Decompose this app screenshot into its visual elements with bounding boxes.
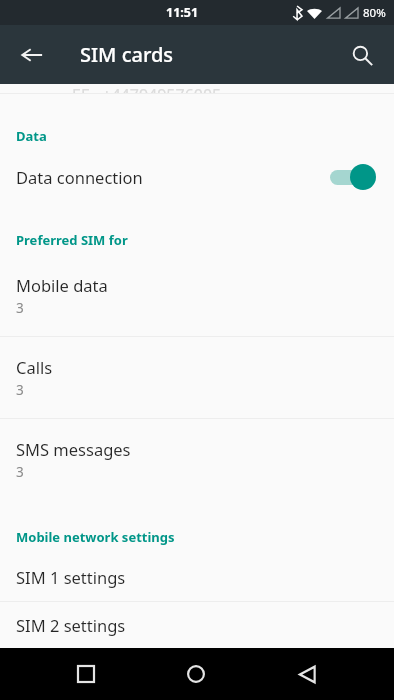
button[interactable]: Back — [8, 31, 56, 79]
button[interactable]: Back — [283, 650, 331, 698]
staticText: 3 — [16, 381, 24, 399]
staticText: Calls — [16, 356, 53, 378]
staticText: Mobile network settings — [16, 528, 175, 546]
staticText: 3 — [16, 463, 24, 481]
button[interactable]: EE +447949576005 — [0, 84, 394, 93]
staticText: SMS messages — [16, 438, 131, 460]
button[interactable]: Recents — [62, 650, 110, 698]
button[interactable]: Mobile data — [0, 255, 394, 336]
staticText: Data connection — [16, 166, 328, 188]
button[interactable]: SMS messages — [0, 419, 394, 500]
staticText: 3 — [16, 299, 24, 317]
button[interactable]: SIM 2 settings — [0, 602, 394, 648]
staticText: SIM 2 settings — [16, 614, 126, 636]
staticText: 80% — [363, 5, 386, 21]
button[interactable]: Home — [172, 650, 220, 698]
staticText: Data — [16, 127, 47, 145]
button[interactable]: Search — [338, 31, 386, 79]
staticText: Mobile data — [16, 274, 108, 296]
staticText: EE +447949576005 — [72, 84, 222, 93]
staticText: Preferred SIM for — [16, 231, 128, 249]
button[interactable]: SIM 1 settings — [0, 552, 394, 601]
button[interactable]: Data connection — [0, 151, 394, 203]
staticText: SIM cards — [80, 41, 174, 68]
staticText: SIM 1 settings — [16, 566, 126, 588]
staticText: 11:51 — [166, 4, 199, 21]
button[interactable]: Calls — [0, 337, 394, 418]
